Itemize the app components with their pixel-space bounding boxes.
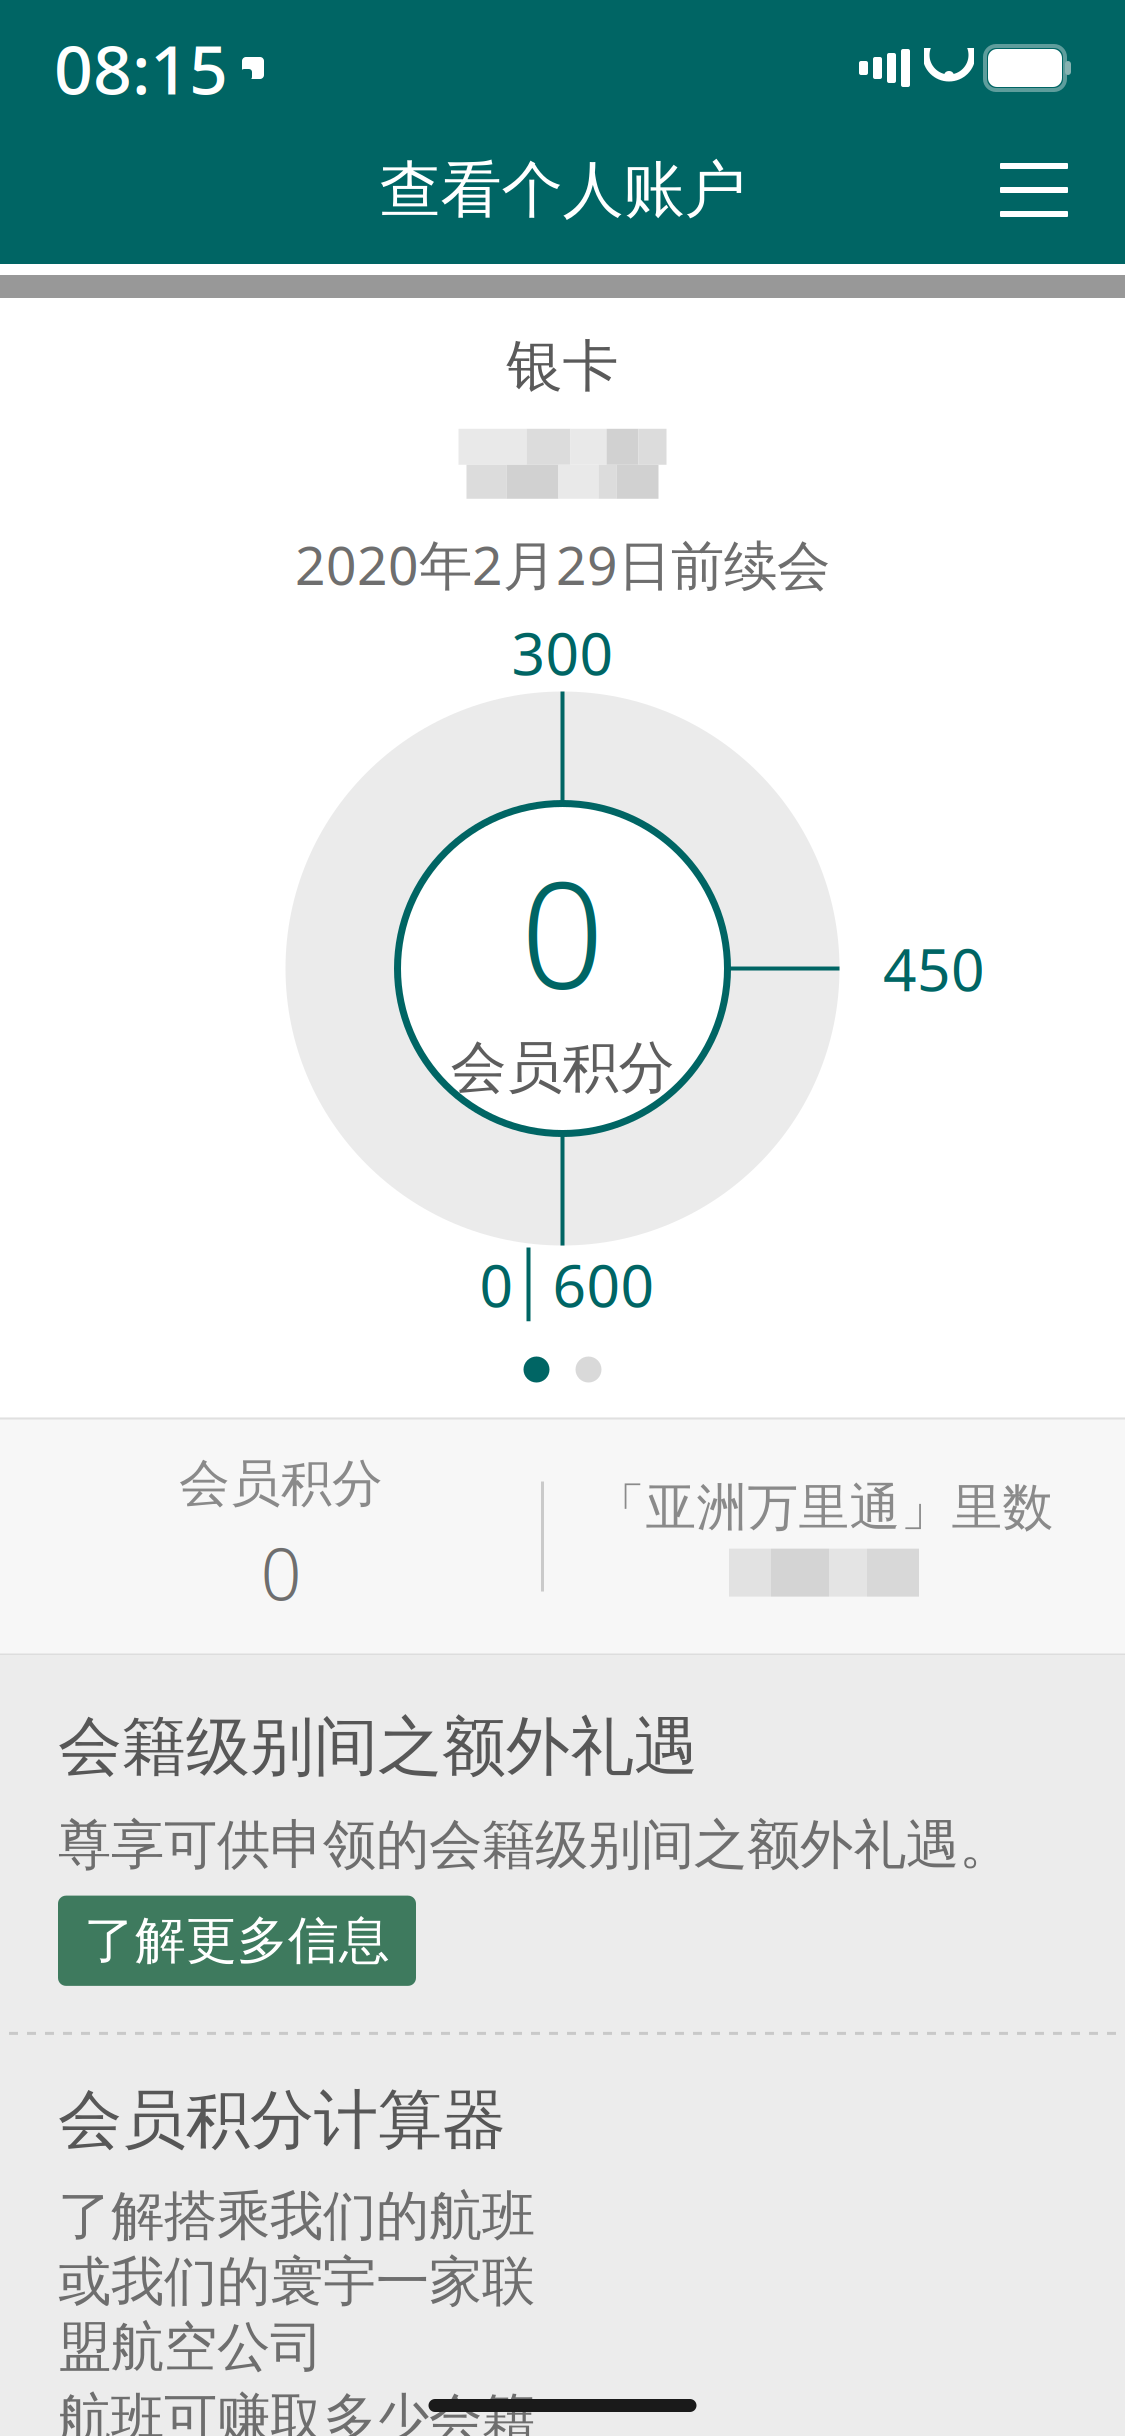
staticText: 会籍级别间之额外礼遇 xyxy=(58,1707,698,1786)
staticText: 尊享可供申领的会籍级别间之额外礼遇。 xyxy=(58,1812,1012,1878)
staticText: 0 xyxy=(260,1525,301,1620)
staticText: 了解搭乘我们的航班或我们的寰宇一家联盟航空公司 xyxy=(58,2183,535,2380)
staticText: 会员积分 xyxy=(179,1453,383,1515)
staticText: 查看个人账户 xyxy=(379,152,745,228)
staticText: 0 xyxy=(479,1246,513,1323)
staticText: 会员积分计算器 xyxy=(58,2081,506,2159)
button[interactable]: 会员积分计算器 xyxy=(0,2035,1125,2436)
staticText: 2020年2月29日前续会 xyxy=(295,529,830,600)
staticText: 会员积分 xyxy=(450,1033,674,1102)
staticText: 0 xyxy=(520,835,604,1029)
staticText: 08:15 xyxy=(54,23,228,113)
staticText: 300 xyxy=(511,614,613,691)
staticText: 450 xyxy=(883,930,985,1007)
staticText: 了解更多信息 xyxy=(84,1910,390,1972)
staticText: 航班可赚取多少会籍积分。 xyxy=(58,2386,535,2436)
staticText: 银卡 xyxy=(506,332,618,401)
staticText: 「亚洲万里通」里数 xyxy=(594,1476,1053,1539)
button[interactable]: Menu xyxy=(979,138,1089,242)
button[interactable]: 会籍级别间之额外礼遇 xyxy=(0,1655,1125,2032)
staticText: 600 xyxy=(552,1246,654,1323)
